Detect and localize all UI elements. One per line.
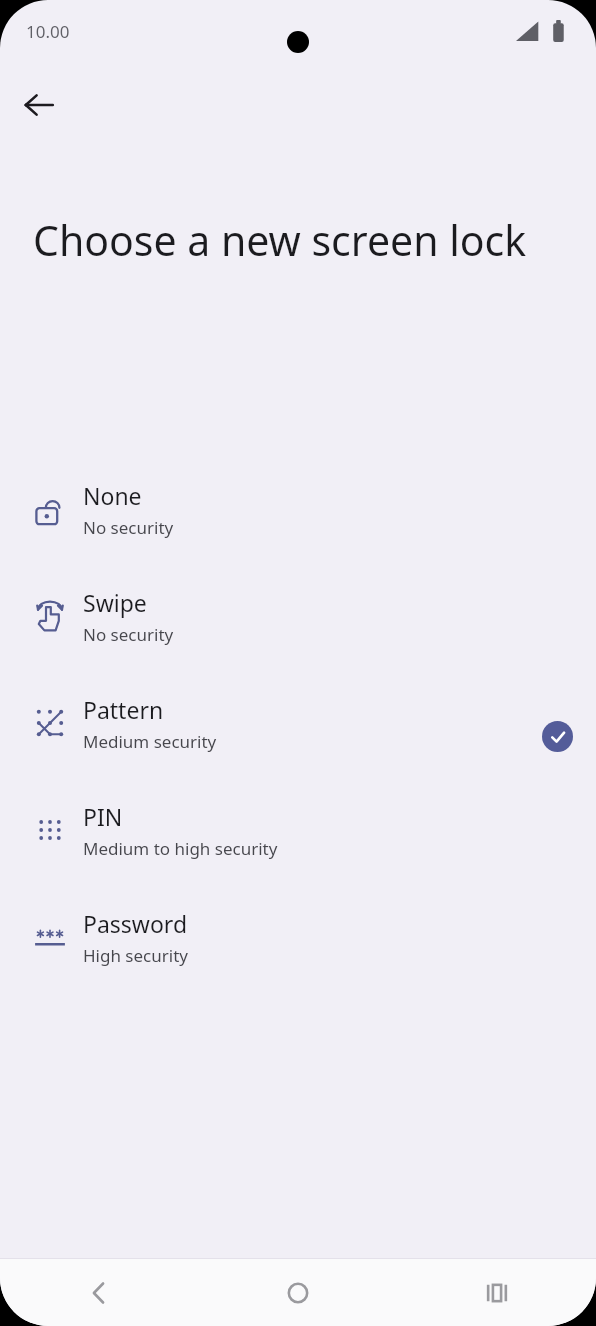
button[interactable]: PIN — [0, 789, 596, 896]
button[interactable]: Back — [0, 1259, 198, 1326]
staticText: Medium security — [83, 730, 217, 753]
staticText: No security — [83, 516, 174, 539]
button[interactable]: None — [0, 468, 596, 575]
button[interactable]: Recents — [397, 1259, 596, 1326]
button[interactable]: Pattern — [0, 682, 596, 789]
button[interactable]: Password — [0, 896, 596, 1003]
staticText: Password — [83, 908, 188, 939]
staticText: 10.00 — [26, 20, 70, 43]
button[interactable]: Home — [198, 1259, 397, 1326]
staticText: High security — [83, 944, 188, 967]
staticText: None — [83, 480, 142, 511]
staticText: Medium to high security — [83, 837, 278, 860]
staticText: Choose a new screen lock — [33, 212, 553, 268]
button[interactable]: Swipe — [0, 575, 596, 682]
button[interactable]: Back — [10, 76, 68, 134]
staticText: No security — [83, 623, 174, 646]
staticText: Pattern — [83, 694, 164, 725]
staticText: PIN — [83, 801, 123, 832]
staticText: Swipe — [83, 587, 147, 618]
